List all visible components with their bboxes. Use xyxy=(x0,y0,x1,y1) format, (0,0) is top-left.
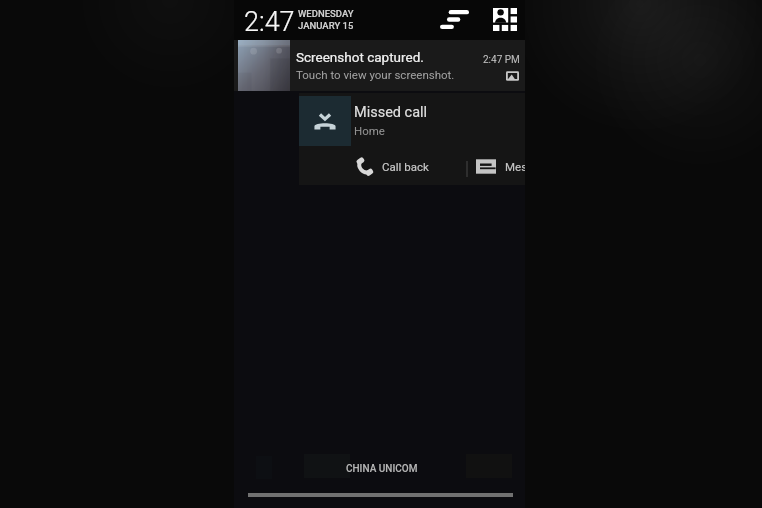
staticText: JANUARY 15 xyxy=(298,20,354,31)
button[interactable]: Close notification shade xyxy=(248,489,513,501)
staticText: 2:47 PM xyxy=(483,54,520,66)
staticText: 2:47 xyxy=(244,6,295,38)
staticText: Home xyxy=(354,124,385,137)
staticText: CHINA UNICOM xyxy=(346,463,418,475)
staticText: Call back xyxy=(382,160,429,173)
button[interactable] xyxy=(299,93,525,147)
staticText: WEDNESDAY xyxy=(298,8,354,19)
staticText: Message xyxy=(505,160,525,173)
staticText: Screenshot captured. xyxy=(296,49,424,65)
button[interactable]: Quick settings xyxy=(489,3,521,35)
staticText: Touch to view your screenshot. xyxy=(296,68,455,81)
staticText: Missed call xyxy=(354,104,428,121)
button[interactable]: Call back xyxy=(299,147,466,185)
button[interactable]: Message xyxy=(468,147,525,185)
button[interactable]: Screenshot captured. xyxy=(234,40,525,91)
button[interactable]: Clear all notifications xyxy=(438,3,470,35)
